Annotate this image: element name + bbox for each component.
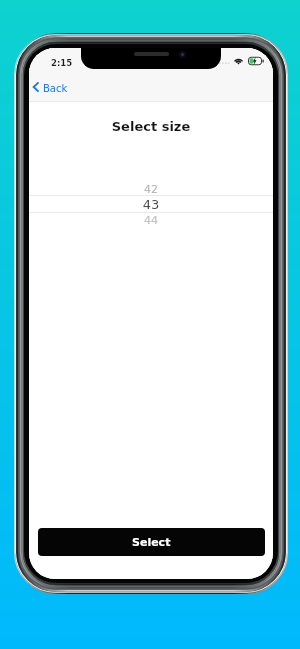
button[interactable]: 42: [29, 178, 273, 195]
staticText: 2:15: [51, 58, 73, 68]
button[interactable]: 44: [29, 213, 273, 230]
staticText: Back: [43, 83, 68, 95]
staticText: 44: [29, 214, 273, 227]
button[interactable]: Select: [38, 528, 265, 556]
button[interactable]: Back: [29, 75, 81, 99]
staticText: 42: [29, 183, 273, 196]
button[interactable]: 43: [29, 195, 273, 212]
staticText: Select: [132, 536, 171, 549]
staticText: Select size: [29, 119, 273, 134]
staticText: 43: [29, 197, 273, 212]
